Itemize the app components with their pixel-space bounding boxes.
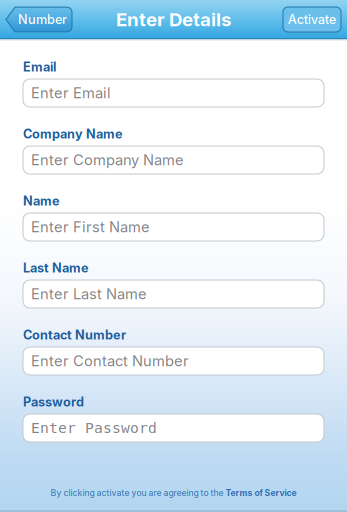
staticText: Enter Last Name (31, 285, 147, 303)
button[interactable]: Number (6, 6, 72, 33)
button[interactable]: Enter Company Name (23, 146, 324, 174)
button[interactable]: Enter Last Name (23, 280, 324, 308)
staticText: Enter Contact Number (31, 352, 189, 370)
button[interactable]: Enter Email (23, 79, 324, 107)
staticText: Enter Email (31, 84, 111, 102)
button[interactable]: By clicking activate you are agreeing to… (50, 487, 296, 498)
button[interactable]: Enter Contact Number (23, 347, 324, 375)
staticText: Number (18, 12, 67, 27)
staticText: Last Name (23, 260, 89, 276)
staticText: Email (23, 59, 56, 75)
staticText: Enter Details (116, 8, 231, 31)
staticText: Enter Password (31, 419, 157, 437)
staticText: Enter Company Name (31, 151, 184, 169)
button[interactable]: Activate (283, 7, 341, 32)
staticText: Name (23, 193, 60, 209)
staticText: Activate (288, 12, 336, 27)
staticText: Password (23, 394, 84, 410)
staticText: Company Name (23, 126, 123, 142)
staticText: By clicking activate you are agreeing to… (50, 487, 225, 498)
staticText: Contact Number (23, 327, 126, 343)
staticText: Enter First Name (31, 218, 150, 236)
button[interactable]: Enter First Name (23, 213, 324, 241)
button[interactable]: Enter Password (23, 414, 324, 442)
staticText: Terms of Service (225, 487, 296, 498)
